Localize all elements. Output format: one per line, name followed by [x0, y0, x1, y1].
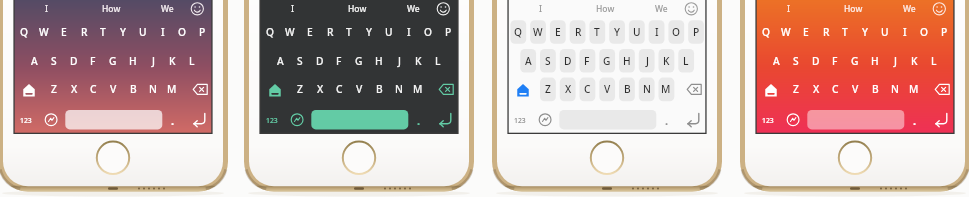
button[interactable]: L — [919, 51, 949, 71]
button[interactable]: L — [671, 51, 701, 71]
button[interactable] — [436, 79, 456, 99]
button[interactable]: K — [899, 51, 929, 71]
button[interactable]: K — [403, 51, 433, 71]
button[interactable]: X — [553, 79, 583, 99]
button[interactable]: V — [592, 79, 622, 99]
button[interactable] — [190, 79, 210, 99]
button[interactable]: H — [860, 51, 890, 71]
button[interactable]: P — [929, 22, 959, 42]
button[interactable]: O — [167, 22, 197, 42]
button[interactable] — [783, 110, 803, 130]
button[interactable]: X — [59, 79, 89, 99]
button[interactable]: F — [820, 51, 850, 71]
button[interactable]: . — [900, 110, 930, 130]
button[interactable]: . — [652, 110, 682, 130]
button[interactable]: G — [344, 51, 374, 71]
button[interactable]: I — [526, 0, 556, 19]
button[interactable]: U — [870, 22, 900, 42]
button[interactable]: W — [275, 22, 305, 42]
button[interactable]: How — [96, 0, 126, 19]
button[interactable]: K — [157, 51, 187, 71]
button[interactable]: W — [771, 22, 801, 42]
button[interactable]: T — [830, 22, 860, 42]
button[interactable]: How — [838, 0, 868, 19]
button[interactable]: Q — [751, 22, 781, 42]
button[interactable] — [681, 0, 701, 18]
button[interactable]: Y — [850, 22, 880, 42]
button[interactable]: V — [840, 79, 870, 99]
button[interactable]: R — [315, 22, 345, 42]
button[interactable]: P — [681, 22, 711, 42]
button[interactable]: B — [860, 79, 890, 99]
button[interactable]: C — [78, 79, 108, 99]
button[interactable]: T — [334, 22, 364, 42]
button[interactable]: E — [295, 22, 325, 42]
button[interactable]: Y — [108, 22, 138, 42]
button[interactable]: T — [582, 22, 612, 42]
button[interactable]: D — [801, 51, 831, 71]
button[interactable]: How — [590, 0, 620, 19]
button[interactable]: R — [811, 22, 841, 42]
button[interactable]: E — [791, 22, 821, 42]
button[interactable]: T — [88, 22, 118, 42]
button[interactable]: 123 — [505, 110, 535, 130]
button[interactable]: C — [820, 79, 850, 99]
button[interactable]: M — [651, 79, 681, 99]
button[interactable]: K — [651, 51, 681, 71]
button[interactable]: R — [563, 22, 593, 42]
button[interactable]: N — [384, 79, 414, 99]
button[interactable]: How — [342, 0, 372, 19]
button[interactable]: J — [880, 51, 910, 71]
button[interactable]: C — [572, 79, 602, 99]
button[interactable]: B — [612, 79, 642, 99]
button[interactable] — [265, 79, 285, 99]
button[interactable]: I — [32, 0, 62, 19]
button[interactable] — [435, 110, 455, 130]
button[interactable]: B — [118, 79, 148, 99]
button[interactable] — [311, 110, 408, 129]
button[interactable]: J — [384, 51, 414, 71]
button[interactable]: L — [423, 51, 453, 71]
button[interactable]: J — [138, 51, 168, 71]
button[interactable] — [807, 110, 904, 129]
button[interactable] — [929, 0, 949, 18]
button[interactable]: A — [265, 51, 295, 71]
button[interactable] — [492, 0, 722, 197]
button[interactable]: C — [324, 79, 354, 99]
button[interactable]: G — [592, 51, 622, 71]
button[interactable]: Z — [533, 79, 563, 99]
button[interactable]: V — [344, 79, 374, 99]
button[interactable]: 123 — [11, 110, 41, 130]
button[interactable]: M — [157, 79, 187, 99]
button[interactable]: A — [761, 51, 791, 71]
button[interactable] — [189, 110, 209, 130]
button[interactable] — [740, 0, 969, 197]
button[interactable]: Z — [39, 79, 69, 99]
button[interactable]: W — [29, 22, 59, 42]
button[interactable]: J — [632, 51, 662, 71]
button[interactable]: L — [177, 51, 207, 71]
button[interactable]: I — [148, 22, 178, 42]
button[interactable]: Y — [354, 22, 384, 42]
button[interactable]: . — [158, 110, 188, 130]
button[interactable]: 123 — [753, 110, 783, 130]
button[interactable]: . — [404, 110, 434, 130]
button[interactable] — [287, 110, 307, 130]
button[interactable]: U — [128, 22, 158, 42]
button[interactable]: Y — [602, 22, 632, 42]
button[interactable] — [535, 110, 555, 130]
button[interactable]: F — [78, 51, 108, 71]
button[interactable]: N — [880, 79, 910, 99]
button[interactable]: R — [69, 22, 99, 42]
button[interactable]: Q — [255, 22, 285, 42]
button[interactable] — [0, 0, 228, 197]
button[interactable]: X — [801, 79, 831, 99]
button[interactable]: U — [622, 22, 652, 42]
button[interactable]: G — [840, 51, 870, 71]
button[interactable]: F — [324, 51, 354, 71]
button[interactable]: A — [19, 51, 49, 71]
button[interactable]: Q — [503, 22, 533, 42]
button[interactable]: A — [513, 51, 543, 71]
button[interactable]: We — [646, 0, 676, 19]
